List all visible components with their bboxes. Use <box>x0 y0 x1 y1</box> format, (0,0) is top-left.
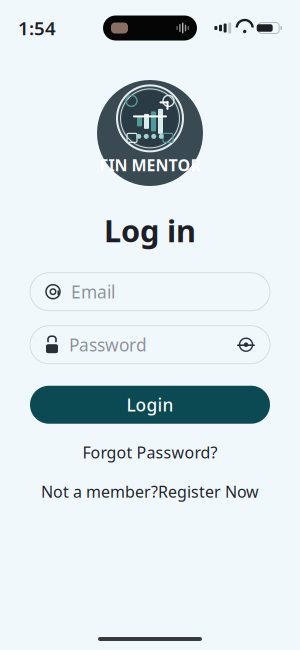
staticText: Password <box>69 333 147 356</box>
staticText: Email <box>71 280 115 303</box>
staticText: Not a member? <box>41 481 158 502</box>
staticText: Log in <box>104 210 196 251</box>
staticText: FIN MENTOR <box>99 154 200 176</box>
button[interactable]: Login <box>30 386 270 424</box>
staticText: Login <box>126 393 173 416</box>
button[interactable]: Register Now <box>158 481 259 502</box>
staticText: Register Now <box>158 481 259 502</box>
button[interactable]: Forgot Password? <box>74 438 225 467</box>
staticText: Forgot Password? <box>82 442 217 463</box>
staticText: 1:54 <box>18 16 56 40</box>
button[interactable]: Show password <box>229 331 255 359</box>
